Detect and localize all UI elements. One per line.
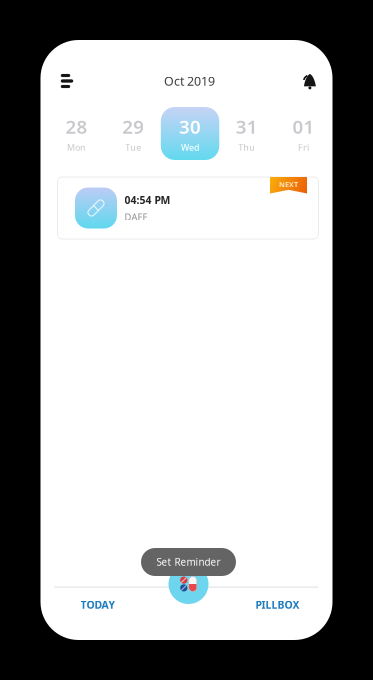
- button[interactable]: 31: [218, 107, 275, 160]
- button[interactable]: 01: [275, 107, 332, 160]
- staticText: NEXT: [279, 179, 298, 189]
- staticText: DAFF: [124, 210, 147, 223]
- staticText: 28: [65, 114, 87, 139]
- staticText: Wed: [181, 141, 199, 153]
- staticText: Set Reminder: [156, 555, 220, 569]
- button[interactable]: TODAY: [40, 588, 155, 622]
- staticText: 01: [293, 114, 315, 139]
- staticText: Thu: [238, 141, 255, 153]
- staticText: Mon: [67, 141, 86, 153]
- button[interactable]: PILLBOX: [222, 588, 332, 622]
- button[interactable]: 04:54 PM: [57, 177, 318, 239]
- button[interactable]: Notifications: [286, 66, 316, 96]
- button[interactable]: 29: [105, 107, 162, 160]
- button[interactable]: 28: [48, 107, 105, 160]
- staticText: TODAY: [80, 598, 115, 612]
- staticText: PILLBOX: [255, 598, 299, 612]
- staticText: Tue: [125, 141, 141, 153]
- staticText: Oct 2019: [164, 73, 215, 89]
- staticText: 29: [122, 114, 144, 139]
- staticText: 31: [236, 114, 258, 139]
- button[interactable]: Menu: [60, 66, 90, 96]
- button[interactable]: Add reminder: [168, 564, 208, 604]
- staticText: Fri: [298, 141, 309, 153]
- button[interactable]: 30: [162, 107, 218, 160]
- staticText: 04:54 PM: [124, 193, 170, 207]
- staticText: 30: [179, 114, 201, 139]
